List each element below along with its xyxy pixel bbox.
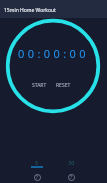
button[interactable]: 30 bbox=[64, 158, 78, 181]
button[interactable]: 5 bbox=[30, 158, 44, 181]
button[interactable]: Help bbox=[68, 174, 75, 181]
staticText: 30 bbox=[68, 159, 75, 166]
staticText: START bbox=[32, 82, 47, 89]
staticText: 15min Home Workout bbox=[4, 7, 56, 14]
staticText: RESET bbox=[56, 82, 71, 89]
button[interactable]: RESET bbox=[53, 80, 74, 91]
button[interactable]: START bbox=[29, 80, 50, 91]
staticText: 00:00:00 bbox=[18, 46, 89, 60]
button[interactable]: Help bbox=[34, 174, 41, 181]
staticText: ? bbox=[36, 174, 39, 181]
staticText: ? bbox=[70, 174, 73, 181]
staticText: 5 bbox=[35, 159, 39, 166]
